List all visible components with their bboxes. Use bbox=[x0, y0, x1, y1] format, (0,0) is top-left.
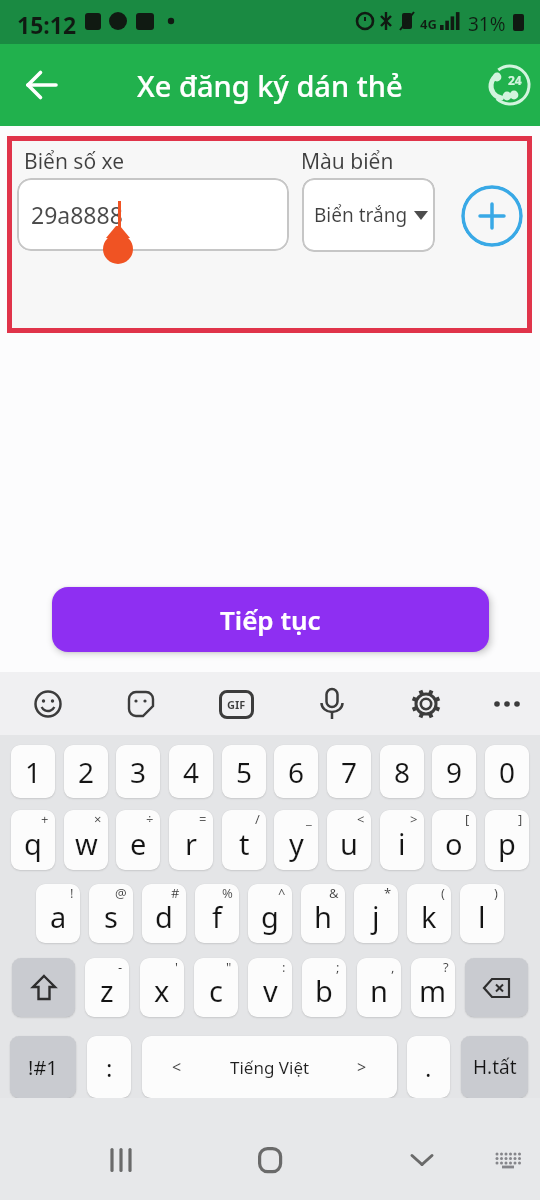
button[interactable]: k bbox=[407, 884, 451, 943]
staticText: m bbox=[419, 971, 447, 1010]
button[interactable]: j bbox=[354, 884, 398, 943]
staticText: 0 bbox=[499, 753, 516, 791]
button[interactable] bbox=[16, 59, 68, 111]
staticText: ^ bbox=[278, 884, 286, 902]
staticText: , bbox=[391, 958, 395, 976]
button[interactable]: 8 bbox=[380, 745, 424, 798]
staticText: Màu biển bbox=[301, 147, 394, 176]
button[interactable]: 29a8888 bbox=[17, 178, 289, 251]
button[interactable] bbox=[97, 1136, 145, 1184]
button[interactable]: 7 bbox=[327, 745, 371, 798]
staticText: n bbox=[370, 971, 388, 1010]
button[interactable]: y bbox=[274, 810, 318, 870]
button[interactable] bbox=[115, 678, 167, 730]
button[interactable]: w bbox=[64, 810, 108, 870]
button[interactable]: 2 bbox=[64, 745, 108, 798]
staticText: = bbox=[199, 810, 207, 828]
button[interactable]: o bbox=[432, 810, 476, 870]
button[interactable]: c bbox=[194, 958, 238, 1017]
button[interactable]: x bbox=[140, 958, 184, 1017]
staticText: a bbox=[50, 897, 67, 936]
button[interactable]: H.tất bbox=[461, 1036, 528, 1098]
button[interactable] bbox=[22, 678, 74, 730]
staticText: 7 bbox=[341, 753, 358, 791]
button[interactable]: Biển trắng bbox=[302, 178, 435, 252]
staticText: ) bbox=[494, 884, 498, 902]
button[interactable]: q bbox=[11, 810, 55, 870]
button[interactable] bbox=[400, 678, 452, 730]
button[interactable] bbox=[246, 1136, 294, 1184]
staticText: b bbox=[315, 971, 333, 1010]
button[interactable] bbox=[398, 1136, 446, 1184]
button[interactable]: p bbox=[485, 810, 529, 870]
button[interactable]: GIF bbox=[210, 678, 262, 730]
staticText: v bbox=[263, 971, 278, 1010]
staticText: Tiếng Việt bbox=[230, 1056, 310, 1079]
button[interactable]: h bbox=[301, 884, 345, 943]
button[interactable] bbox=[465, 958, 528, 1017]
button[interactable]: 1 bbox=[11, 745, 55, 798]
staticText: w bbox=[75, 824, 98, 863]
button[interactable] bbox=[12, 958, 75, 1017]
button[interactable]: d bbox=[142, 884, 186, 943]
staticText: 4 bbox=[183, 753, 200, 791]
button[interactable]: 3 bbox=[116, 745, 160, 798]
button[interactable]: 4 bbox=[169, 745, 213, 798]
button[interactable]: 5 bbox=[222, 745, 266, 798]
staticText: !#1 bbox=[28, 1054, 58, 1081]
staticText: f bbox=[212, 897, 222, 936]
staticText: / bbox=[255, 810, 260, 828]
button[interactable]: l bbox=[460, 884, 504, 943]
staticText: 9 bbox=[446, 753, 463, 791]
staticText: t bbox=[239, 824, 250, 863]
button[interactable] bbox=[306, 678, 358, 730]
button[interactable]: b bbox=[302, 958, 346, 1017]
button[interactable]: v bbox=[248, 958, 292, 1017]
staticText: < bbox=[172, 1056, 182, 1078]
button[interactable]: 0 bbox=[485, 745, 529, 798]
button[interactable]: !#1 bbox=[10, 1036, 76, 1098]
staticText: l bbox=[478, 897, 486, 936]
staticText: y bbox=[289, 824, 304, 863]
button[interactable]: e bbox=[116, 810, 160, 870]
button[interactable]: Tiếp tục bbox=[52, 587, 489, 652]
button[interactable] bbox=[461, 185, 523, 247]
staticText: ÷ bbox=[146, 810, 154, 828]
staticText: d bbox=[155, 897, 173, 936]
button[interactable] bbox=[481, 678, 533, 730]
button[interactable]: t bbox=[222, 810, 266, 870]
button[interactable]: r bbox=[169, 810, 213, 870]
staticText: # bbox=[171, 884, 180, 902]
button[interactable]: n bbox=[357, 958, 401, 1017]
button[interactable] bbox=[484, 1136, 532, 1184]
button[interactable]: 9 bbox=[432, 745, 476, 798]
staticText: c bbox=[209, 971, 223, 1010]
button[interactable]: Tiếng Việt bbox=[142, 1036, 397, 1098]
button[interactable]: z bbox=[85, 958, 129, 1017]
staticText: 15:12 bbox=[17, 9, 77, 40]
staticText: : bbox=[282, 958, 286, 976]
button[interactable]: u bbox=[327, 810, 371, 870]
staticText: % bbox=[222, 884, 233, 902]
button[interactable]: g bbox=[248, 884, 292, 943]
button[interactable]: . bbox=[407, 1036, 450, 1098]
staticText: ' bbox=[175, 958, 178, 976]
button[interactable]: a bbox=[36, 884, 80, 943]
button[interactable]: s bbox=[89, 884, 133, 943]
button[interactable]: 6 bbox=[274, 745, 318, 798]
staticText: x bbox=[154, 971, 170, 1010]
button[interactable]: f bbox=[195, 884, 239, 943]
staticText: 1 bbox=[25, 753, 42, 791]
button[interactable]: : bbox=[87, 1036, 131, 1098]
button[interactable]: 24 bbox=[485, 62, 533, 110]
staticText: k bbox=[421, 897, 437, 936]
staticText: q bbox=[24, 824, 42, 863]
staticText: 31% bbox=[468, 11, 506, 37]
button[interactable]: m bbox=[411, 958, 455, 1017]
staticText: @ bbox=[115, 884, 127, 902]
staticText: - bbox=[118, 958, 123, 976]
button[interactable]: i bbox=[380, 810, 424, 870]
staticText: h bbox=[314, 897, 332, 936]
staticText: " bbox=[226, 958, 232, 976]
staticText: 24 bbox=[508, 72, 522, 88]
